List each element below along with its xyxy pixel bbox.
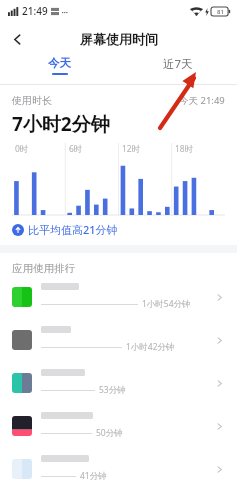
staticText: 7小时2分钟 <box>12 111 110 137</box>
button[interactable]: 41分钟 <box>0 447 237 490</box>
staticText: 21:49 <box>22 4 48 18</box>
staticText: 1小时42分钟 <box>126 341 175 353</box>
staticText: 屏幕使用时间 <box>80 31 158 47</box>
button[interactable]: 今天 <box>0 56 118 75</box>
button[interactable]: 近7天 <box>118 56 237 77</box>
button[interactable]: 53分钟 <box>0 361 237 404</box>
staticText: 使用时长 <box>12 94 52 107</box>
staticText: 12时 <box>122 143 141 155</box>
staticText: 81 <box>217 8 224 16</box>
staticText: 应用使用排行 <box>12 262 75 275</box>
other: Details <box>211 461 227 477</box>
button[interactable]: 1小时54分钟 <box>0 275 237 318</box>
other: Details <box>211 418 227 434</box>
button[interactable]: 比平均值高21分钟 <box>12 222 118 237</box>
staticText: 比平均值高21分钟 <box>28 222 118 237</box>
other: Details <box>211 289 227 305</box>
staticText: 今天 21:49 <box>179 94 225 107</box>
staticText: 近7天 <box>163 56 193 72</box>
staticText: 18时 <box>175 143 194 155</box>
button[interactable]: 50分钟 <box>0 404 237 447</box>
other: Details <box>211 332 227 348</box>
staticText: 0时 <box>15 143 29 155</box>
staticText: 53分钟 <box>99 384 126 396</box>
staticText: 41分钟 <box>80 470 107 482</box>
button[interactable]: 1小时42分钟 <box>0 318 237 361</box>
staticText: 1小时54分钟 <box>142 298 191 310</box>
staticText: 今天 <box>48 56 71 70</box>
button[interactable]: Back <box>0 22 34 56</box>
other: Details <box>211 375 227 391</box>
staticText: 50分钟 <box>96 427 123 439</box>
staticText: 6时 <box>69 143 83 155</box>
